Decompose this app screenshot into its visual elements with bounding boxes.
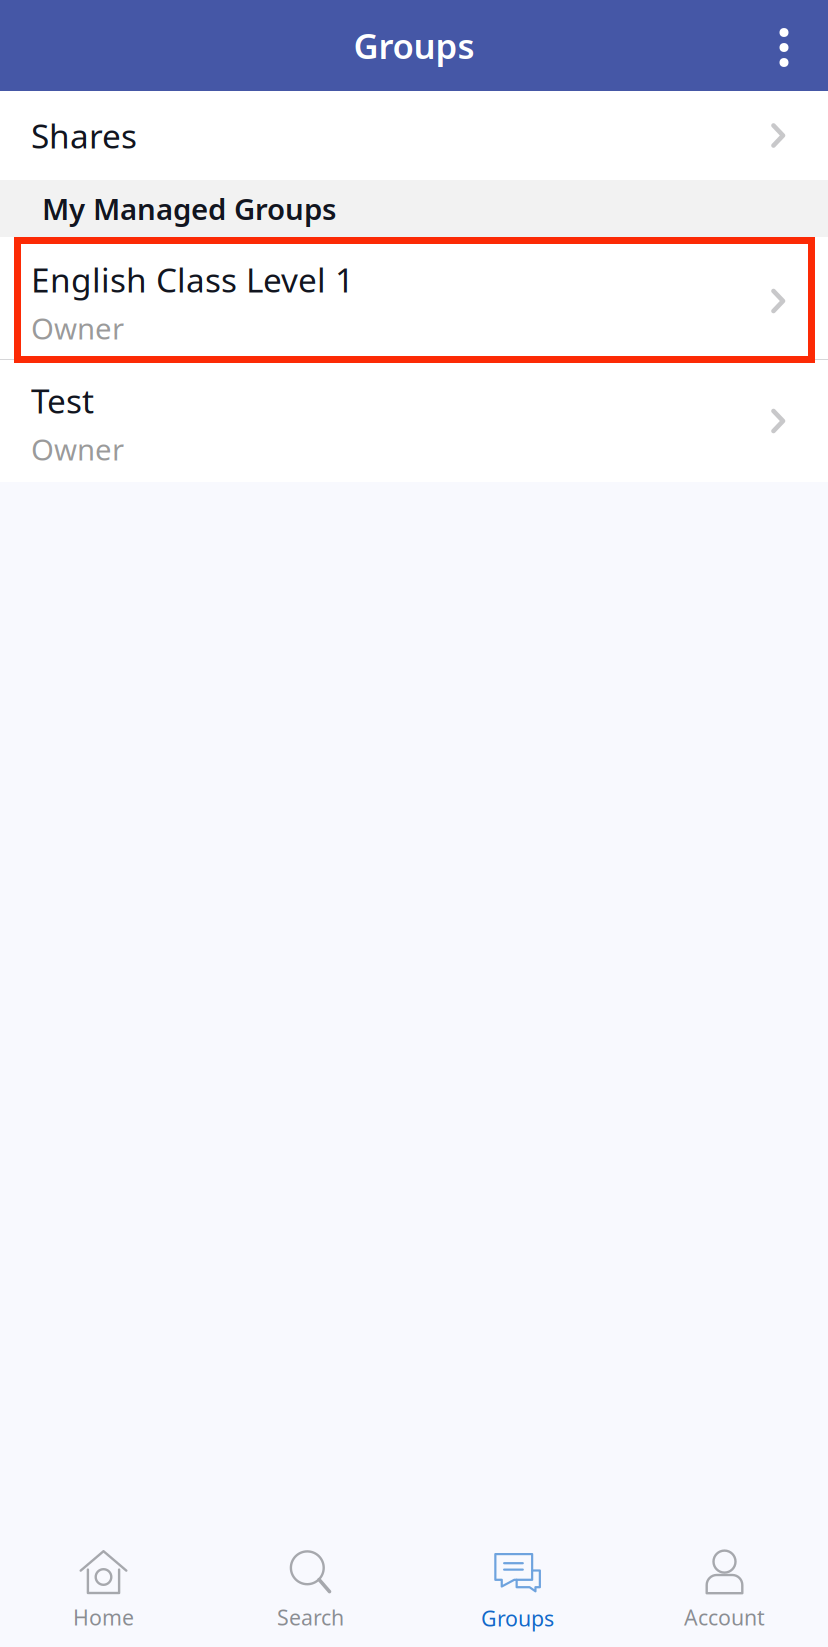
button[interactable]: Search bbox=[207, 1521, 414, 1647]
staticText: Owner bbox=[31, 309, 124, 348]
staticText: Test bbox=[31, 378, 94, 423]
staticText: Groups bbox=[481, 1604, 554, 1632]
button[interactable]: Groups bbox=[414, 1521, 621, 1647]
staticText: My Managed Groups bbox=[42, 189, 336, 228]
staticText: Account bbox=[684, 1603, 765, 1631]
button[interactable]: Account bbox=[621, 1521, 828, 1647]
staticText: Search bbox=[277, 1603, 344, 1631]
staticText: Shares bbox=[31, 113, 137, 158]
button[interactable]: Test bbox=[0, 360, 828, 482]
staticText: English Class Level 1 bbox=[31, 257, 354, 302]
button[interactable]: Home bbox=[0, 1521, 207, 1647]
button[interactable]: More options bbox=[740, 0, 828, 91]
button[interactable]: Shares bbox=[0, 91, 828, 180]
staticText: Owner bbox=[31, 430, 124, 469]
button[interactable]: English Class Level 1 bbox=[0, 237, 828, 359]
staticText: Groups bbox=[353, 22, 474, 68]
staticText: Home bbox=[73, 1603, 134, 1631]
